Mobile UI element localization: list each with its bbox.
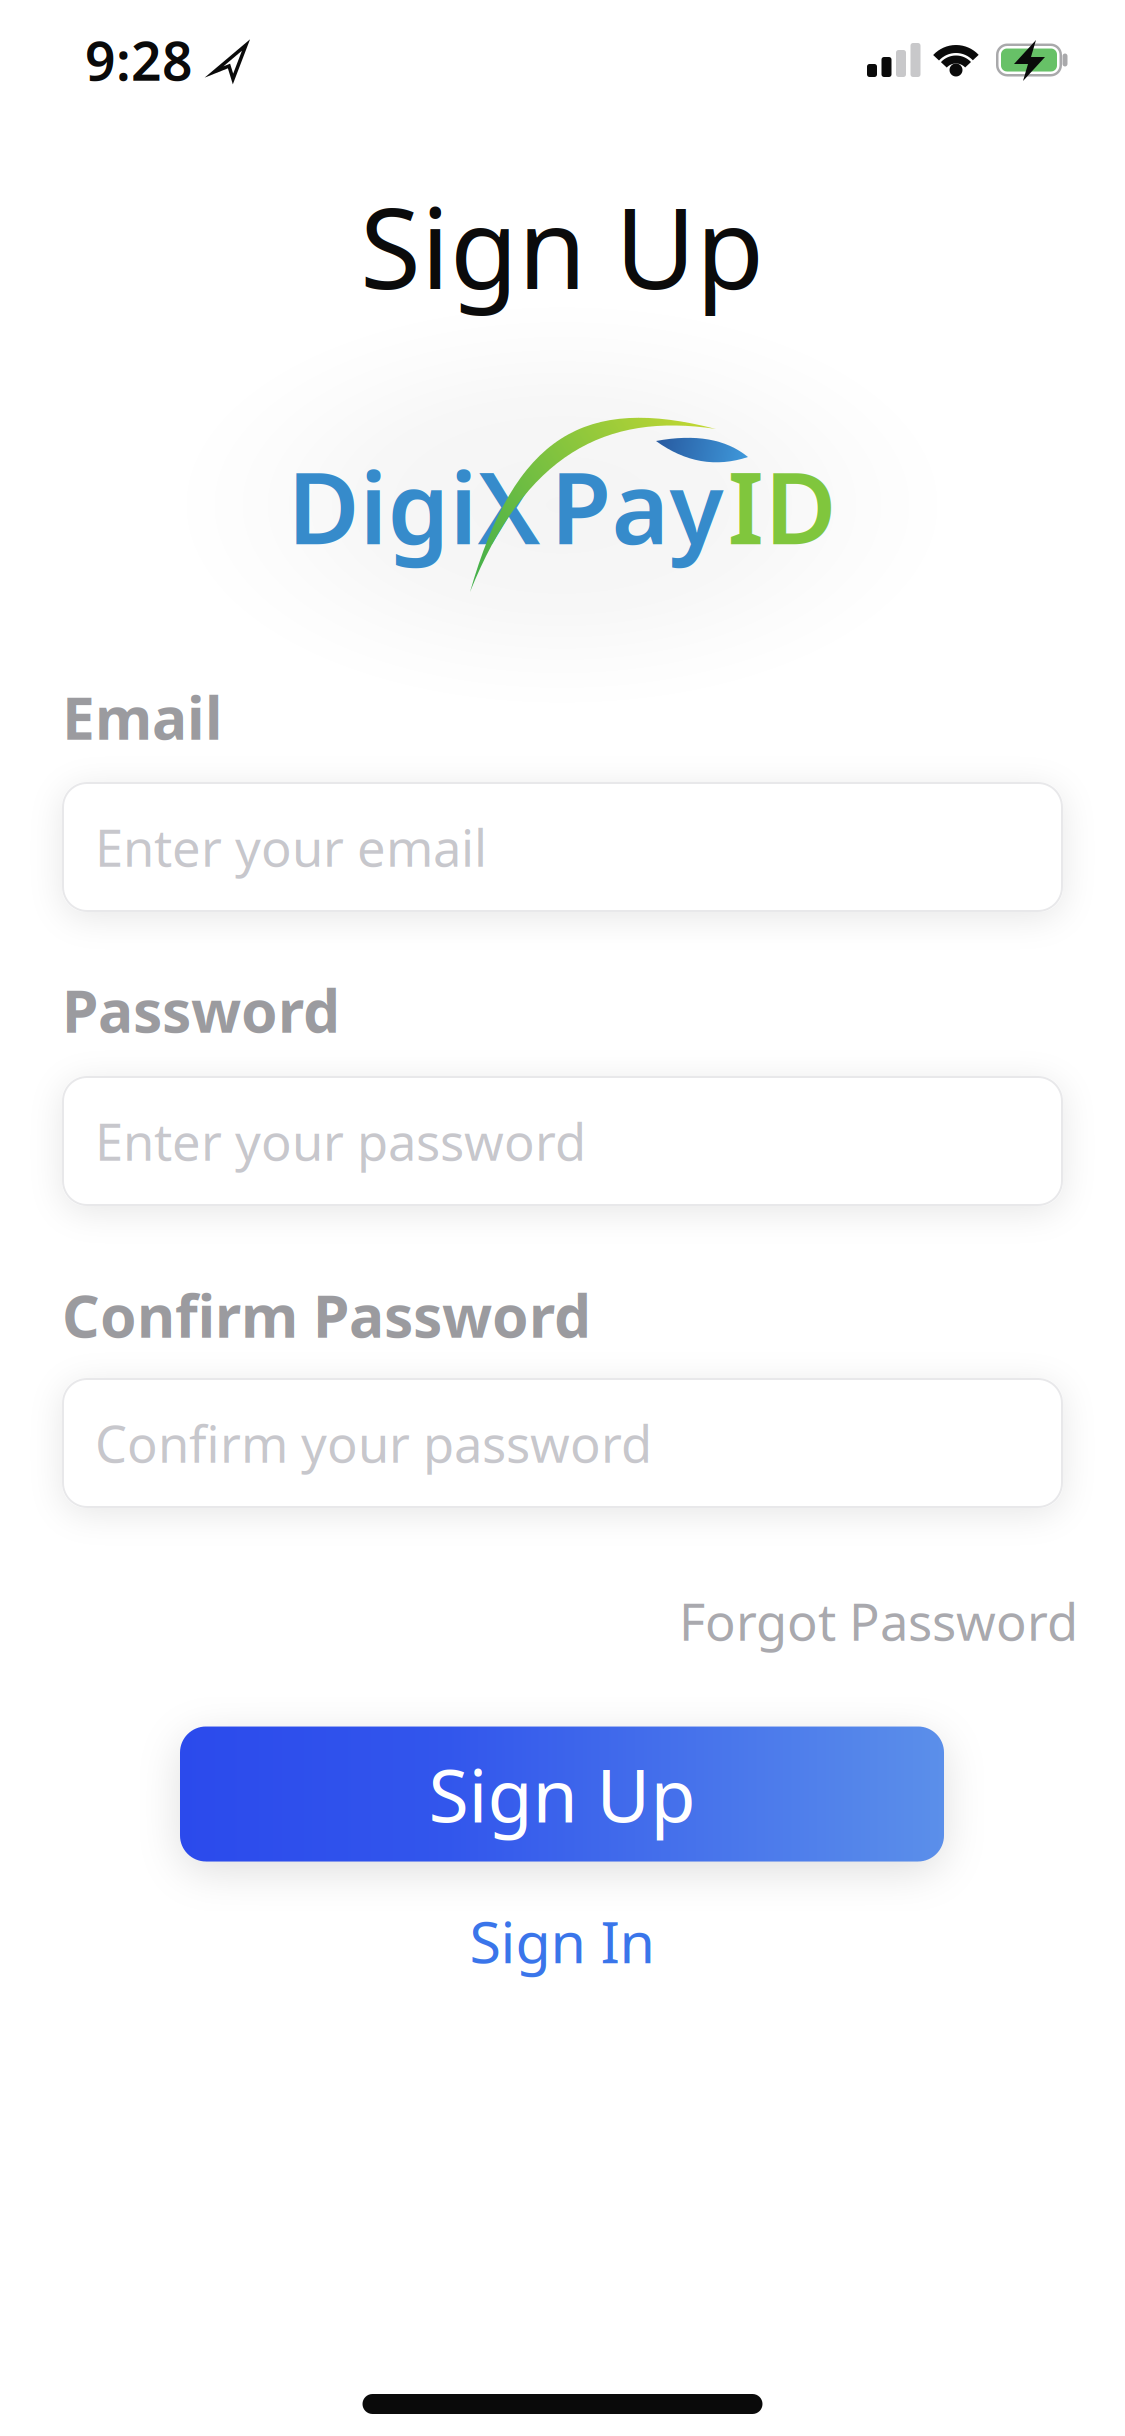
staticText: ID xyxy=(727,440,836,571)
staticText: Confirm Password xyxy=(62,1276,591,1354)
staticText: Sign In xyxy=(469,1903,654,1979)
staticText: Enter your email xyxy=(95,813,487,881)
staticText: Enter your password xyxy=(95,1107,586,1175)
staticText: Forgot Password xyxy=(679,1587,1078,1655)
button[interactable]: Forgot Password xyxy=(679,1587,1078,1655)
staticText: 9:28 xyxy=(85,25,193,95)
staticText: DigiX xyxy=(287,440,540,571)
staticText: Password xyxy=(62,971,340,1049)
button[interactable]: Sign In xyxy=(469,1903,654,1979)
staticText: Confirm your password xyxy=(95,1409,652,1477)
staticText: Sign Up xyxy=(428,1745,695,1843)
staticText: Sign Up xyxy=(360,172,764,319)
staticText: Email xyxy=(62,678,222,756)
button[interactable]: Enter your email xyxy=(62,782,1063,912)
button[interactable]: Enter your password xyxy=(62,1076,1063,1206)
button[interactable]: Confirm your password xyxy=(62,1378,1063,1508)
staticText: Pay xyxy=(550,440,723,571)
button[interactable]: Sign Up xyxy=(180,1726,944,1861)
